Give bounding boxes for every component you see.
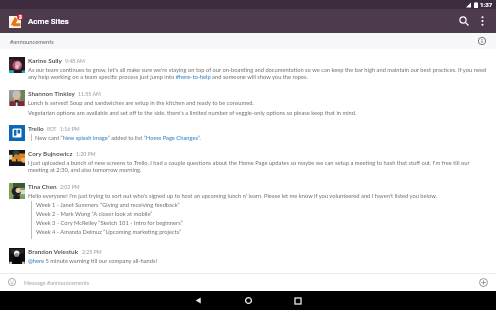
button[interactable]: Home xyxy=(223,291,273,310)
button[interactable]: Emoji xyxy=(7,277,17,287)
staticText: Week 3 - Cory McReiley “Sketch 101 - Int… xyxy=(36,219,183,226)
staticText: Week 2 - Mark Wong “A closer look at mob… xyxy=(36,210,153,217)
staticText: 2:02 PM xyxy=(60,184,80,190)
staticText: Week 4 - Amanda Delmuz “Upcoming marketi… xyxy=(36,228,182,235)
staticText: @here 5 minute warning till our company … xyxy=(28,257,158,264)
staticText: Brandon Velestuk xyxy=(28,248,79,256)
button[interactable]: Recent apps xyxy=(273,291,323,310)
staticText: 1:20 PM xyxy=(76,151,96,157)
staticText: Vegetarian options are available and set… xyxy=(28,109,357,116)
button[interactable]: More options xyxy=(473,9,492,33)
staticText: 9:48 AM xyxy=(65,58,85,64)
staticText: Hello everyone! I'm just trying to sort … xyxy=(28,192,437,199)
button[interactable]: Add attachment xyxy=(477,276,489,288)
staticText: BOT xyxy=(47,126,57,132)
staticText: #announcements xyxy=(10,38,54,45)
button[interactable]: Back xyxy=(173,291,223,310)
staticText: 3 xyxy=(19,15,22,20)
staticText: Trello xyxy=(28,125,44,133)
staticText: 11:55 AM xyxy=(78,91,101,97)
staticText: New card “New splash image” added to lis… xyxy=(35,134,201,141)
staticText: 1:37 xyxy=(480,1,493,8)
staticText: Lunch is served! Soup and sandwiches are… xyxy=(28,99,254,106)
staticText: Cory Bujnowicz xyxy=(28,150,73,158)
staticText: 1:16 PM xyxy=(60,126,80,132)
staticText: Tina Chen xyxy=(28,183,57,191)
staticText: 2:25 PM xyxy=(82,249,102,255)
button[interactable]: Search xyxy=(454,9,473,33)
button[interactable]: Channel info xyxy=(476,35,488,47)
staticText: As our team continues to grow, let's all… xyxy=(28,66,487,81)
staticText: Week 1 - Janet Summers “Giving and recei… xyxy=(36,201,180,208)
staticText: Karine Sully xyxy=(28,57,62,65)
staticText: I just uploaded a bunch of new screens t… xyxy=(28,159,487,174)
staticText: Shannon Tinkley xyxy=(28,90,75,98)
staticText: Acme Sites xyxy=(28,17,69,26)
staticText: Message #announcements xyxy=(24,279,90,286)
